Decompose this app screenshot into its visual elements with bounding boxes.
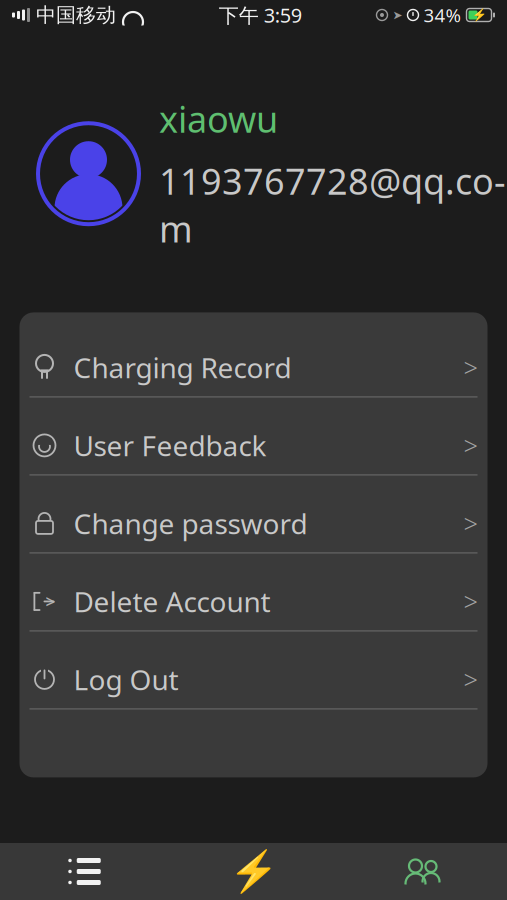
staticText: User Feedback	[73, 427, 266, 464]
staticText: ➤	[392, 8, 402, 22]
staticText: Charging Record	[73, 349, 291, 386]
staticText: >	[463, 351, 477, 384]
staticText: 34%	[423, 3, 461, 27]
button[interactable]: >	[19, 572, 487, 650]
button[interactable]: Log Out	[19, 650, 487, 728]
button[interactable]: Charge	[169, 843, 338, 900]
button[interactable]: Account	[338, 843, 507, 900]
staticText: >	[463, 585, 477, 618]
staticText: >	[463, 663, 477, 696]
staticText: Change password	[73, 505, 307, 542]
staticText: >	[45, 590, 55, 613]
staticText: Delete Account	[73, 583, 270, 620]
staticText: >	[463, 507, 477, 540]
button[interactable]: List	[0, 843, 169, 900]
button[interactable]: Charging Record	[19, 338, 487, 416]
staticText: >	[463, 429, 477, 462]
staticText: xiaowu	[159, 95, 278, 143]
button[interactable]: Change password	[19, 494, 487, 572]
staticText: 下午 3:59	[219, 2, 302, 28]
staticText: ⚡	[471, 8, 486, 22]
staticText: Log Out	[73, 661, 178, 698]
staticText: ⚡	[228, 849, 278, 894]
staticText: 中国移动	[36, 3, 116, 27]
button[interactable]: User Feedback	[19, 416, 487, 494]
staticText: 1193767728@qq.com	[159, 157, 506, 252]
